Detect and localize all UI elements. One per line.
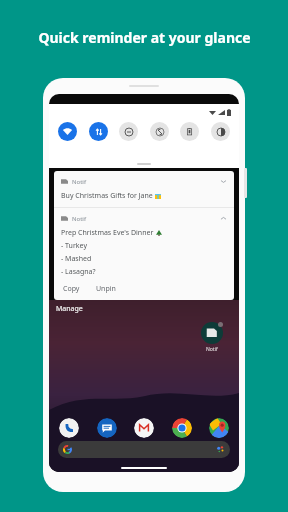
staticText: Notif [72,215,86,223]
button[interactable]: Dark theme [211,122,230,141]
button[interactable]: Chrome [172,418,192,438]
staticText: - Turkey [61,241,87,251]
button[interactable]: Expand [219,177,228,186]
button[interactable]: Collapse [219,214,228,223]
button[interactable]: Notif [201,322,223,353]
staticText: Copy [63,284,80,294]
staticText: - Lasagna? [61,267,96,277]
button[interactable]: Battery saver [180,122,199,141]
button[interactable]: Copy [61,283,82,295]
staticText: - Mashed [61,254,92,264]
button[interactable]: Phone [59,418,79,438]
button[interactable] [58,441,230,458]
button[interactable]: Unpin [94,283,118,295]
staticText: Notif [72,178,86,186]
staticText: Notif [206,346,218,353]
button[interactable]: Wi-Fi [58,122,77,141]
button[interactable]: Maps [209,418,229,438]
button[interactable]: Messages [97,418,117,438]
staticText: Prep Christmas Eve's Dinner [61,228,154,238]
button[interactable]: Manage [56,304,83,314]
staticText: Quick reminder at your glance [38,28,251,47]
staticText: Buy Christmas Gifts for Jane [61,191,153,201]
button[interactable]: Mobile data [89,122,108,141]
button[interactable]: Gmail [134,418,154,438]
button[interactable]: Notif [54,208,234,300]
button[interactable]: Notif [54,171,234,207]
button[interactable]: Do not disturb [119,122,138,141]
staticText: Unpin [96,284,116,294]
button[interactable]: Auto rotate [150,122,169,141]
